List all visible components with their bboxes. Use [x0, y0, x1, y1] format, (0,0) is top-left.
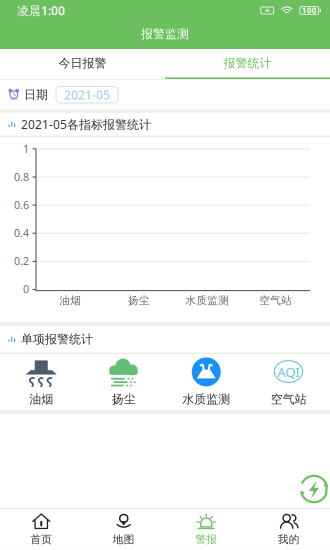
button[interactable]: 2021-05	[56, 86, 118, 103]
staticText: 水质监测	[185, 294, 229, 307]
button[interactable]: 首页	[0, 509, 82, 550]
staticText: 2021-05各指标报警统计	[21, 116, 151, 132]
button[interactable]: 今日报警	[0, 49, 165, 79]
staticText: 地图	[113, 533, 135, 546]
staticText: 0.4	[14, 226, 29, 240]
staticText: 我的	[278, 533, 300, 546]
staticText: 扬尘	[112, 392, 136, 407]
staticText: 0.8	[14, 170, 29, 184]
button[interactable]: 报警统计	[165, 49, 330, 79]
staticText: 报警统计	[223, 56, 271, 70]
staticText: 2021-05	[64, 87, 110, 103]
staticText: 今日报警	[58, 56, 106, 70]
staticText: 警报	[195, 533, 217, 546]
staticText: 空气站	[259, 294, 292, 307]
staticText: 0.2	[14, 254, 29, 268]
staticText: 报警监测	[141, 27, 189, 41]
button[interactable]: 地图	[82, 509, 165, 550]
staticText: 油烟	[29, 392, 53, 407]
staticText: 单项报警统计	[21, 332, 93, 347]
staticText: 0	[23, 282, 29, 296]
staticText: 1	[23, 142, 29, 156]
button[interactable]: 水质监测	[165, 354, 247, 410]
button[interactable]: AQI	[247, 354, 330, 410]
staticText: 油烟	[59, 294, 81, 307]
staticText: 扬尘	[128, 294, 150, 307]
staticText: 空气站	[271, 392, 307, 407]
staticText: AQI	[277, 363, 300, 381]
button[interactable]: 刷新	[299, 474, 329, 504]
staticText: 0.6	[14, 198, 29, 212]
button[interactable]: 我的	[247, 509, 330, 550]
button[interactable]: 警报	[165, 509, 247, 550]
button[interactable]: 油烟	[0, 354, 82, 410]
button[interactable]: 扬尘	[82, 354, 165, 410]
staticText: 首页	[30, 533, 52, 546]
staticText: 水质监测	[182, 392, 230, 407]
staticText: 100	[302, 5, 317, 16]
staticText: 日期	[24, 87, 48, 102]
staticText: 凌晨1:00	[17, 2, 65, 18]
